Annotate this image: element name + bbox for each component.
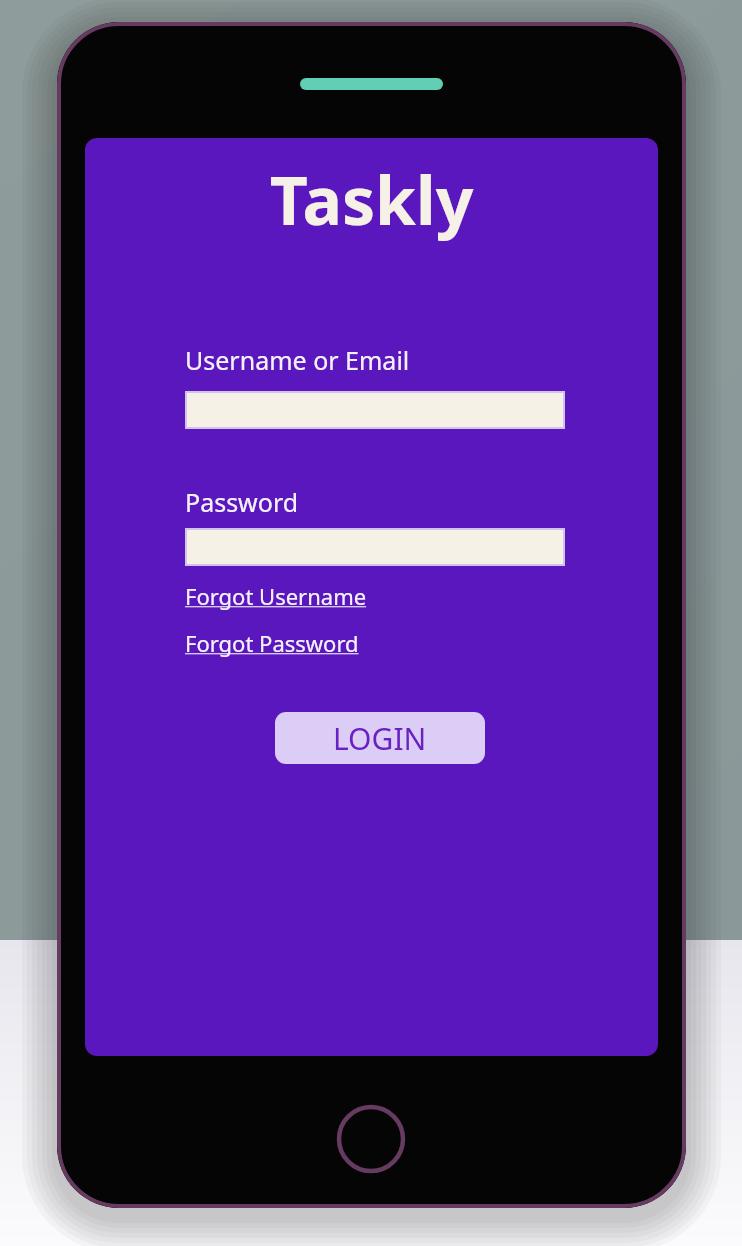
button[interactable]: Forgot Password	[185, 628, 359, 658]
button[interactable]: LOGIN	[275, 712, 485, 764]
staticText: Password	[185, 485, 299, 519]
staticText: Forgot Username	[185, 581, 367, 611]
button[interactable]: Home	[337, 1105, 405, 1173]
staticText: Username or Email	[185, 343, 410, 377]
button[interactable]: Password field	[185, 528, 565, 566]
button[interactable]: Username or Email field	[185, 391, 565, 429]
staticText: Forgot Password	[185, 628, 359, 658]
staticText: LOGIN	[333, 718, 427, 759]
staticText: Taskly	[85, 154, 658, 244]
button[interactable]: Forgot Username	[185, 581, 367, 611]
